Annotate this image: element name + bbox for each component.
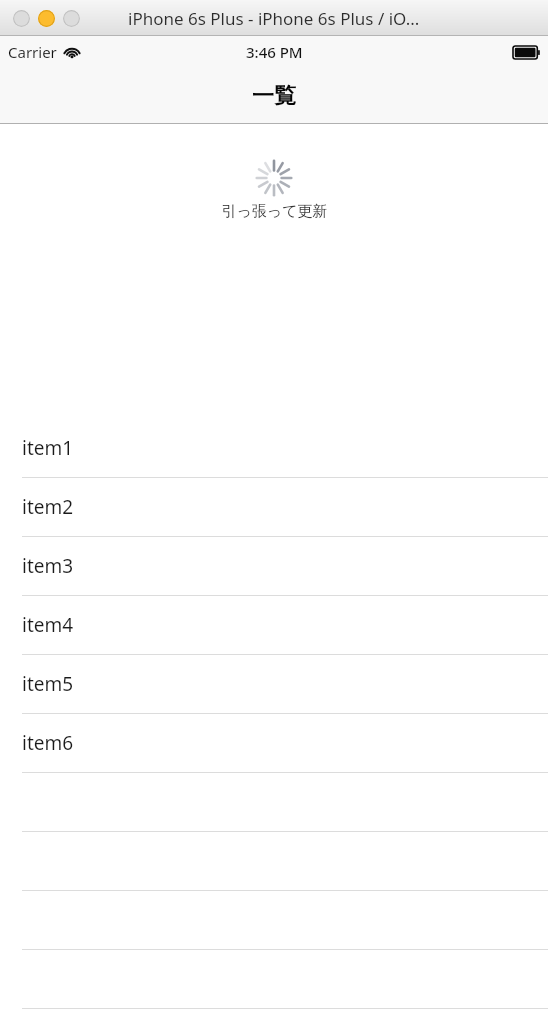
button[interactable]: item3 (0, 537, 548, 596)
staticText: item4 (22, 612, 74, 638)
staticText: item6 (22, 730, 74, 756)
button[interactable]: item2 (0, 478, 548, 537)
button[interactable]: Zoom (63, 10, 80, 27)
staticText: Carrier (8, 42, 57, 62)
staticText: item5 (22, 671, 74, 697)
staticText: item3 (22, 553, 74, 579)
staticText: iPhone 6s Plus - iPhone 6s Plus / iO... (128, 7, 420, 30)
staticText: 3:46 PM (246, 42, 303, 62)
button[interactable]: item4 (0, 596, 548, 655)
staticText: item2 (22, 494, 74, 520)
button[interactable]: Close (13, 10, 30, 27)
button[interactable]: item1 (0, 419, 548, 478)
staticText: item1 (22, 435, 74, 461)
button[interactable]: item6 (0, 714, 548, 773)
staticText: 引っ張って更新 (221, 202, 328, 221)
button[interactable]: item5 (0, 655, 548, 714)
button[interactable]: Minimize (38, 10, 55, 27)
staticText: 一覧 (252, 82, 296, 110)
